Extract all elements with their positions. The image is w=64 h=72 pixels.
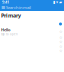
staticText: Search in mail (6, 5, 31, 10)
button[interactable]: Hello (0, 28, 64, 35)
staticText: Primary (1, 12, 21, 19)
staticText: tap to open (1, 32, 18, 36)
staticText: ≡ (1, 4, 5, 11)
staticText: 9:41 (2, 0, 9, 5)
staticText: ▮ ▾ ▰ (53, 0, 62, 4)
staticText: ☆ (59, 44, 63, 48)
button[interactable] (0, 20, 64, 28)
staticText: Hello (1, 27, 10, 32)
staticText: ☆ (59, 29, 63, 34)
staticText: ☆ (59, 39, 63, 44)
button[interactable]: Menu (1, 5, 5, 10)
staticText: ☆ (59, 35, 63, 39)
staticText: ☆ (59, 48, 63, 53)
